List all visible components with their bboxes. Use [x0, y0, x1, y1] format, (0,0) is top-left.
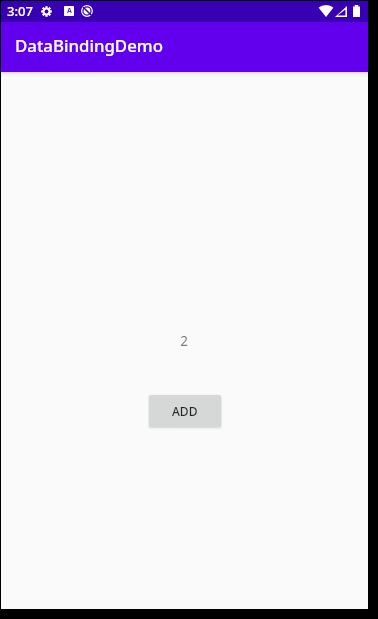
other: Developer settings [41, 6, 52, 17]
other: Mobile signal [335, 6, 347, 17]
other: Battery full [353, 5, 360, 17]
other: Debug app [64, 6, 74, 16]
staticText: 3:07 [7, 2, 33, 20]
other: Wi-Fi [319, 6, 333, 17]
other: Sync disabled [81, 5, 93, 17]
staticText: DataBindingDemo [15, 34, 163, 57]
staticText: 2 [180, 332, 188, 350]
button[interactable]: ADD [149, 395, 221, 427]
staticText: ADD [172, 403, 198, 419]
staticText: A [67, 6, 72, 15]
